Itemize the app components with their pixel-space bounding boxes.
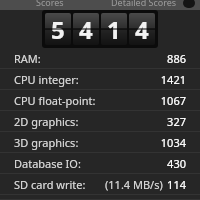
staticText: 327 bbox=[167, 114, 186, 129]
button[interactable]: 5 bbox=[45, 13, 155, 45]
staticText: 4 bbox=[135, 13, 149, 45]
button[interactable]: CPU float-point: bbox=[0, 90, 200, 111]
button[interactable]: 3D graphics: bbox=[0, 132, 200, 153]
staticText: Detailed Scores bbox=[111, 0, 177, 6]
button[interactable]: Overflow menu bbox=[183, 0, 195, 8]
staticText: 430 bbox=[167, 156, 186, 171]
button[interactable]: CPU integer: bbox=[0, 69, 200, 90]
staticText: 3D graphics: bbox=[14, 135, 79, 150]
staticText: RAM: bbox=[14, 51, 41, 66]
button[interactable]: SD card write: bbox=[0, 174, 200, 195]
staticText: 1 bbox=[107, 13, 121, 45]
staticText: 114 bbox=[167, 177, 186, 192]
staticText: 1067 bbox=[160, 93, 186, 108]
staticText: Scores bbox=[36, 0, 64, 6]
staticText: 105 bbox=[167, 195, 186, 200]
staticText: CPU integer: bbox=[14, 72, 79, 87]
button[interactable]: SD card read: bbox=[0, 195, 200, 200]
button[interactable]: Database IO: bbox=[0, 153, 200, 174]
staticText: 5 bbox=[51, 13, 65, 45]
staticText: 1421 bbox=[160, 72, 186, 87]
staticText: CPU float-point: bbox=[14, 93, 96, 108]
button[interactable]: Detailed Scores bbox=[100, 0, 200, 10]
staticText: 4 bbox=[79, 13, 93, 45]
staticText: 1034 bbox=[160, 135, 186, 150]
staticText: 2D graphics: bbox=[14, 114, 79, 129]
button[interactable]: RAM: bbox=[0, 48, 200, 69]
staticText: 886 bbox=[167, 51, 186, 66]
staticText: Database IO: bbox=[14, 156, 81, 171]
staticText: (11.4 MB/s) bbox=[105, 177, 163, 192]
staticText: SD card read: bbox=[14, 195, 83, 200]
staticText: SD card write: bbox=[14, 177, 86, 192]
button[interactable]: 2D graphics: bbox=[0, 111, 200, 132]
button[interactable]: Scores bbox=[0, 0, 100, 10]
staticText: (10.5 MB/s) bbox=[105, 195, 163, 200]
